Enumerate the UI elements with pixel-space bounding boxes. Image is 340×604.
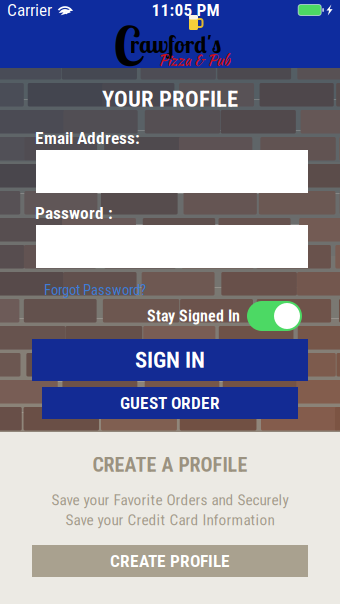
- staticText: Carrier: [7, 0, 52, 20]
- staticText: 11:05 PM: [152, 0, 220, 20]
- staticText: Stay Signed In: [147, 307, 240, 325]
- staticText: Email Address:: [35, 128, 140, 148]
- button[interactable]: SIGN IN: [32, 339, 308, 381]
- staticText: CREATE A PROFILE: [92, 453, 247, 477]
- staticText: SIGN IN: [135, 347, 205, 373]
- button[interactable]: Forgot Password?: [44, 282, 154, 298]
- staticText: YOUR PROFILE: [102, 86, 238, 112]
- staticText: GUEST ORDER: [120, 393, 220, 413]
- staticText: C: [113, 12, 140, 79]
- staticText: Save your Favorite Orders and Securely: [51, 491, 288, 509]
- button[interactable]: CREATE PROFILE: [32, 545, 308, 577]
- staticText: CREATE PROFILE: [110, 551, 230, 571]
- staticText: Forgot Password?: [44, 281, 146, 299]
- button[interactable]: GUEST ORDER: [42, 387, 298, 419]
- button[interactable]: Stay Signed In: [247, 301, 302, 331]
- staticText: Pizza & Pub: [158, 49, 230, 70]
- staticText: Password :: [35, 203, 113, 223]
- staticText: Save your Credit Card Information: [65, 511, 274, 529]
- staticText: rawford's: [130, 29, 221, 59]
